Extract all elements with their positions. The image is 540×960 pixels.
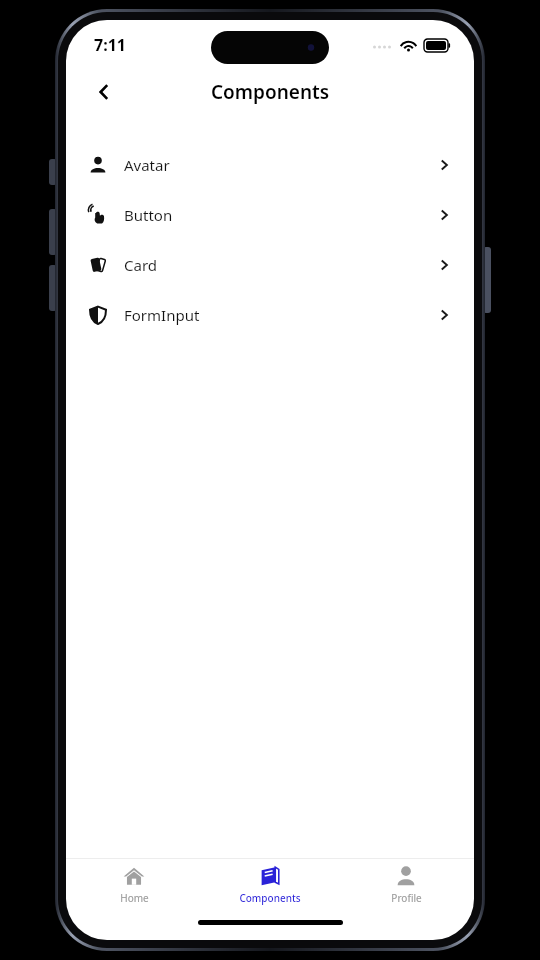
- staticText: Components: [211, 79, 330, 105]
- button[interactable]: Components: [202, 859, 338, 911]
- staticText: Home: [120, 891, 149, 905]
- staticText: Profile: [391, 891, 422, 905]
- button[interactable]: FormInput: [66, 290, 474, 340]
- staticText: FormInput: [124, 305, 436, 325]
- staticText: Card: [124, 255, 436, 275]
- button[interactable]: Home: [66, 859, 202, 911]
- button[interactable]: Button: [66, 190, 474, 240]
- staticText: 7:11: [94, 34, 126, 56]
- staticText: Avatar: [124, 155, 436, 175]
- button[interactable]: Profile: [338, 859, 474, 911]
- staticText: Components: [239, 891, 301, 905]
- button[interactable]: Card: [66, 240, 474, 290]
- staticText: Button: [124, 205, 436, 225]
- button[interactable]: Avatar: [66, 140, 474, 190]
- button[interactable]: Back: [84, 72, 124, 112]
